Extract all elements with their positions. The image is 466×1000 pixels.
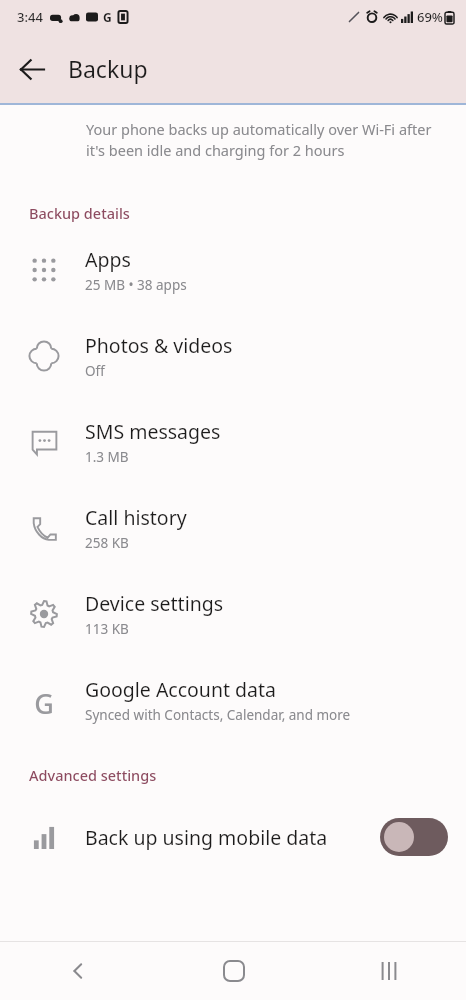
staticText: 1.3 MB xyxy=(85,448,129,466)
staticText: Synced with Contacts, Calendar, and more xyxy=(85,706,351,724)
staticText: 113 KB xyxy=(85,620,129,638)
staticText: 258 KB xyxy=(85,534,129,552)
staticText: 69% xyxy=(417,8,443,26)
staticText: Apps xyxy=(85,246,131,273)
staticText: Google Account data xyxy=(85,676,276,703)
button[interactable]: Device settings xyxy=(0,571,466,657)
button[interactable]: Back xyxy=(8,45,56,93)
staticText: 25 MB • 38 apps xyxy=(85,276,187,294)
staticText: Your phone backs up automatically over W… xyxy=(86,119,446,161)
staticText: G xyxy=(34,685,54,715)
staticText: Back up using mobile data xyxy=(85,824,368,851)
button[interactable]: Photos & videos xyxy=(0,313,466,399)
staticText: Device settings xyxy=(85,590,224,617)
staticText: G xyxy=(103,9,112,25)
button[interactable]: Call history xyxy=(0,485,466,571)
button[interactable]: Apps xyxy=(0,227,466,313)
staticText: Advanced settings xyxy=(29,765,157,785)
staticText: SMS messages xyxy=(85,418,221,445)
button[interactable]: Back xyxy=(0,942,156,1000)
staticText: Call history xyxy=(85,504,187,531)
button[interactable]: Recents xyxy=(311,942,466,1000)
staticText: Photos & videos xyxy=(85,332,233,359)
button[interactable]: Home xyxy=(156,942,311,1000)
staticText: Off xyxy=(85,362,105,380)
staticText: Backup details xyxy=(29,203,130,223)
staticText: Backup xyxy=(68,53,148,84)
button[interactable]: SMS messages xyxy=(0,399,466,485)
button[interactable]: G xyxy=(0,657,466,743)
button[interactable]: Back up using mobile data toggle xyxy=(380,818,448,856)
button[interactable]: Back up using mobile data xyxy=(0,789,466,885)
staticText: 3:44 xyxy=(17,8,43,26)
